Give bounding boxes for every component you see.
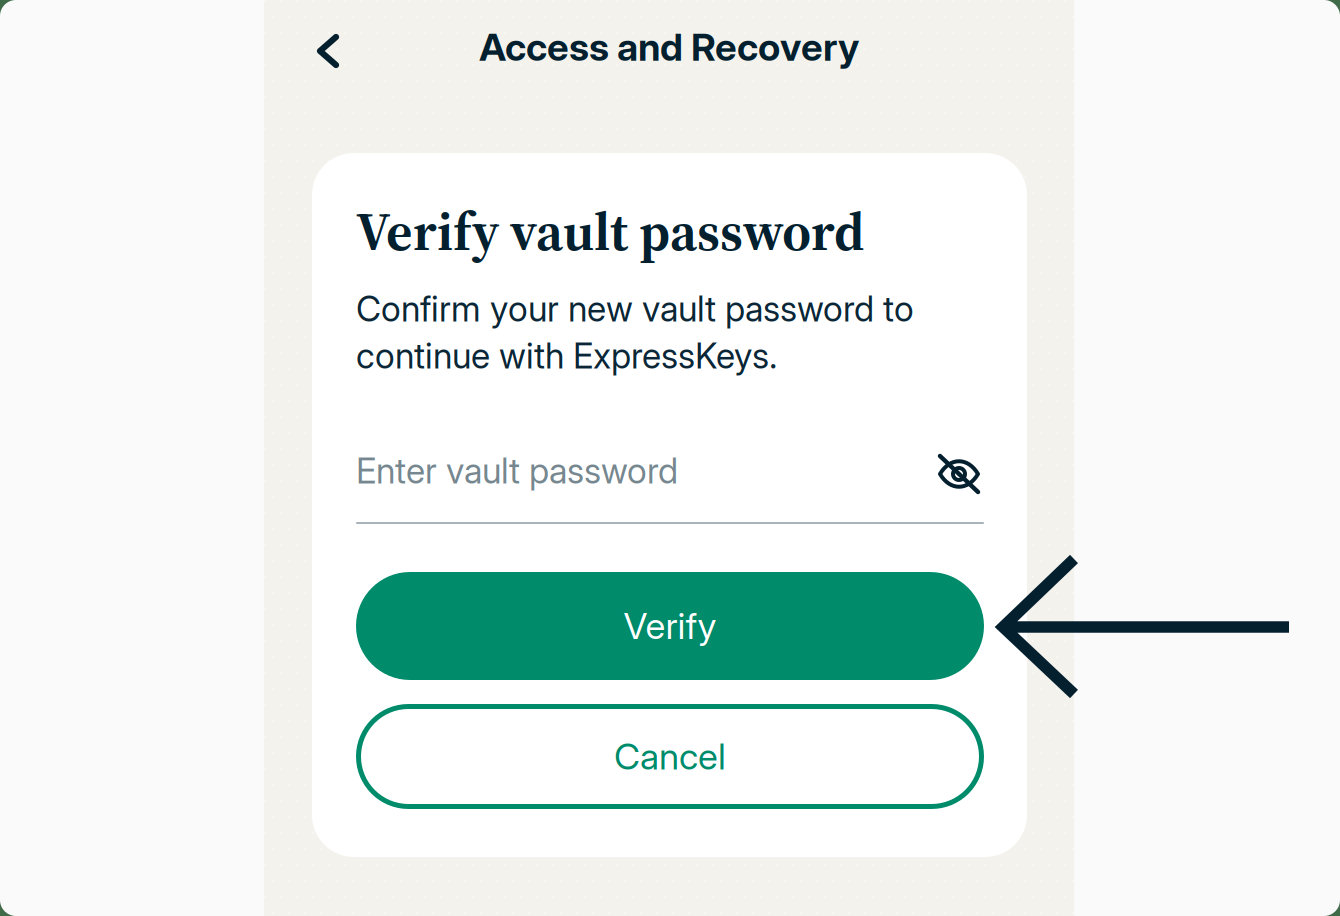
staticText: Enter vault password: [356, 450, 678, 492]
button[interactable]: Cancel: [356, 704, 984, 809]
button[interactable]: Show password: [923, 438, 995, 510]
staticText: Verify vault password: [356, 194, 864, 268]
staticText: Confirm your new vault password to: [356, 288, 914, 330]
button[interactable]: Verify: [356, 572, 984, 680]
staticText: continue with ExpressKeys.: [356, 335, 777, 377]
button[interactable]: Back: [284, 8, 372, 96]
staticText: Cancel: [614, 735, 726, 778]
staticText: Access and Recovery: [479, 24, 859, 70]
staticText: Verify: [623, 604, 716, 648]
